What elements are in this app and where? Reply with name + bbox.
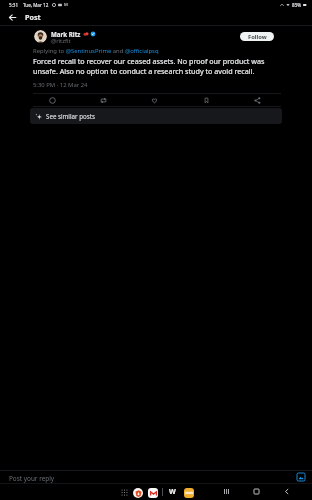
button[interactable]: Share [250,93,264,107]
staticText: 5:31 [9,2,19,8]
button[interactable]: Files [184,488,194,498]
button[interactable]: Wikipedia [167,487,177,497]
button[interactable]: Add media [294,470,307,483]
button[interactable]: See similar posts [30,108,282,124]
staticText: Post [25,12,41,22]
button[interactable]: Back [5,10,19,24]
staticText: Forced recall to recover our ceased asse… [33,56,267,76]
staticText: Replying to @SentinusPrime and @official… [33,47,159,55]
button[interactable]: Gmail [148,488,158,498]
button[interactable]: Brave [133,488,143,498]
staticText: 5:30 PM · 12 Mar 24 [33,81,88,89]
staticText: Tue, Mar 12 [23,2,49,8]
button[interactable]: Follow [240,32,274,41]
staticText: See similar posts [46,112,95,120]
button[interactable]: Like [147,93,161,107]
staticText: M [64,2,68,8]
button[interactable]: Home [250,485,263,498]
button[interactable]: Back [280,485,293,498]
button[interactable]: Reply [45,93,59,107]
button[interactable]: Repost [96,93,110,107]
staticText: @ritzfit [51,37,71,45]
staticText: Post your reply [9,474,55,483]
button[interactable]: Bookmark [199,93,213,107]
staticText: W [169,487,176,497]
staticText: Mark Ritz [51,30,81,38]
staticText: Follow [248,33,267,41]
staticText: 85% [292,2,302,8]
button[interactable]: Recents [220,485,233,498]
button[interactable]: Profile photo [34,30,47,43]
